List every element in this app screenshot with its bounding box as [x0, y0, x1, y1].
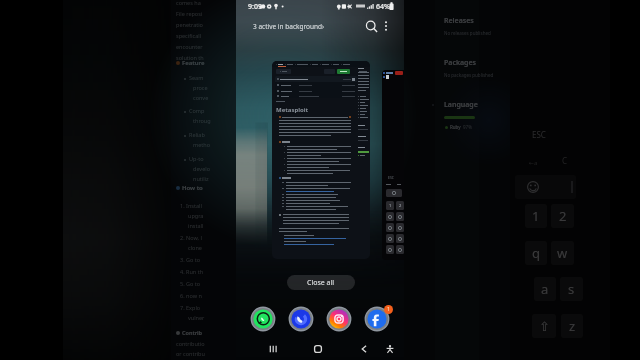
staticText: 1 — [389, 203, 392, 208]
staticText: File reposi — [176, 10, 203, 17]
staticText: z — [569, 317, 576, 335]
button[interactable]: a — [534, 277, 556, 301]
staticText: Feature — [182, 59, 205, 67]
button[interactable]: Termux — [382, 70, 404, 260]
staticText: Contrib — [182, 329, 203, 336]
staticText: 9:09 — [248, 2, 262, 12]
staticText: Ruby — [450, 124, 461, 130]
button[interactable]: Search — [361, 16, 381, 36]
staticText: ESC — [388, 175, 395, 180]
staticText: metho — [193, 141, 210, 148]
staticText: contributio — [176, 340, 205, 347]
button[interactable]: Back — [356, 341, 372, 357]
button[interactable]: Phone — [289, 307, 313, 331]
button[interactable]: Instagram — [327, 307, 351, 331]
staticText: 4. Run th — [180, 268, 204, 275]
button[interactable]: GitHub — [272, 61, 370, 259]
button[interactable]: Emoji — [515, 175, 576, 199]
staticText: ESC — [532, 129, 546, 140]
staticText: Up-to — [189, 155, 204, 162]
staticText: 2 — [559, 207, 567, 225]
staticText: Comp — [189, 107, 205, 114]
staticText: Packages — [444, 58, 477, 68]
staticText: vulner — [188, 314, 205, 321]
staticText: specificall — [176, 32, 202, 39]
staticText: encounter — [176, 43, 203, 50]
staticText: C — [562, 155, 568, 166]
staticText: 2 — [399, 203, 402, 208]
button[interactable]: Close all — [287, 275, 355, 290]
staticText: solution th — [176, 54, 204, 61]
staticText: No packages published — [444, 72, 494, 78]
staticText: q — [532, 244, 540, 262]
button[interactable]: s — [560, 277, 583, 301]
staticText: Releases — [444, 16, 474, 26]
staticText: conve — [193, 94, 209, 101]
staticText: 3. Go to — [180, 256, 201, 263]
button[interactable]: ⇧ — [532, 314, 556, 338]
button[interactable]: More options — [376, 16, 396, 36]
staticText: Metasploit — [276, 106, 309, 114]
staticText: or contribu — [176, 350, 205, 357]
staticText: develo — [193, 165, 211, 172]
button[interactable]: Recents — [265, 341, 281, 357]
staticText: 1. Install — [180, 202, 202, 209]
staticText: install — [188, 222, 204, 229]
staticText: upgra — [188, 212, 204, 219]
staticText: 1 — [387, 306, 390, 313]
staticText: a — [541, 280, 549, 298]
staticText: Reliab — [189, 131, 205, 138]
staticText: 5. Go to — [180, 280, 201, 287]
staticText: 1 — [532, 207, 540, 225]
staticText: 97% — [463, 124, 472, 130]
button[interactable]: WhatsApp — [251, 307, 275, 331]
staticText: Seam — [189, 74, 204, 81]
staticText: Language — [444, 100, 478, 110]
staticText: 64% — [376, 2, 390, 12]
button[interactable]: Facebook — [365, 307, 389, 331]
staticText: 2. Now, l — [180, 234, 202, 241]
staticText: No releases published — [444, 30, 491, 36]
button[interactable]: 2 — [551, 204, 574, 228]
button[interactable]: Accessibility — [382, 341, 398, 357]
button[interactable]: z — [561, 314, 583, 338]
staticText: s — [568, 280, 575, 298]
staticText: ⇧ — [539, 319, 550, 334]
button[interactable]: 3 active in background› — [250, 19, 328, 34]
staticText: w — [557, 244, 568, 262]
button[interactable]: w — [551, 241, 574, 265]
staticText: 7. Explo — [180, 304, 201, 311]
staticText: 3 active in background› — [253, 22, 325, 31]
staticText: 6. now n — [180, 292, 202, 299]
staticText: nutiliz — [193, 175, 209, 182]
button[interactable]: Home — [310, 341, 326, 357]
staticText: ←a — [529, 159, 538, 167]
staticText: comes ha — [176, 0, 201, 6]
staticText: clone — [188, 244, 202, 251]
button[interactable]: q — [525, 241, 547, 265]
staticText: Close all — [307, 278, 335, 288]
staticText: throug — [193, 117, 211, 124]
staticText: How to — [182, 184, 203, 192]
staticText: penetratio — [176, 21, 203, 28]
staticText: proce — [193, 84, 208, 91]
button[interactable]: 1 — [525, 204, 547, 228]
